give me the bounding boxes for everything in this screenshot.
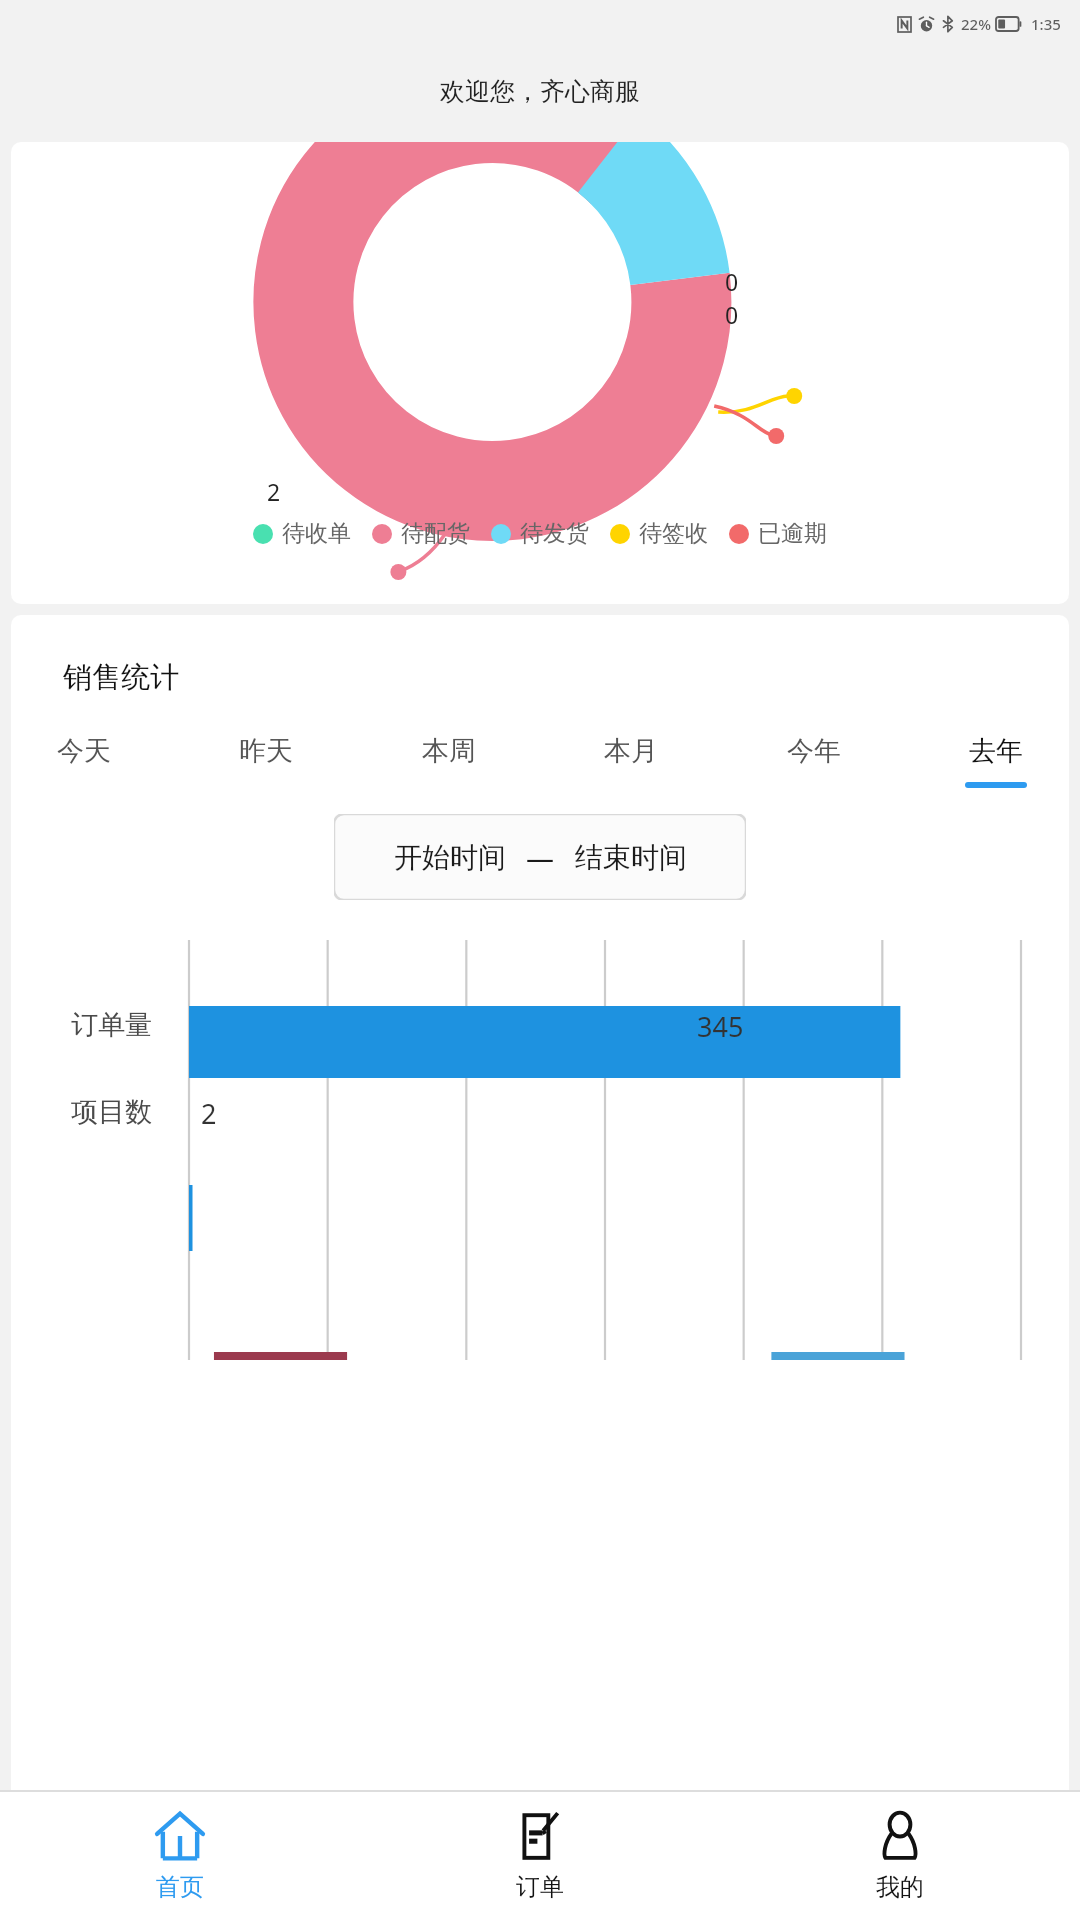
staticText: 22% <box>961 14 991 34</box>
button[interactable]: 去年 <box>955 734 1037 788</box>
staticText: 订单量 <box>71 1008 152 1042</box>
staticText: 订单 <box>516 1872 564 1902</box>
staticText: 0 <box>725 299 739 330</box>
staticText: 去年 <box>969 734 1023 768</box>
staticText: 2 <box>201 1095 217 1132</box>
staticText: 2 <box>267 476 281 507</box>
staticText: 待配货 <box>401 519 470 548</box>
button[interactable]: 待发货 <box>491 519 589 548</box>
staticText: 结束时间 <box>575 840 687 875</box>
staticText: 销售统计 <box>63 659 179 696</box>
staticText: 待发货 <box>520 519 589 548</box>
staticText: 今天 <box>57 734 111 768</box>
button[interactable]: 待收单 <box>253 519 351 548</box>
button[interactable]: 本月 <box>590 734 672 788</box>
staticText: 1:35 <box>1031 14 1061 34</box>
staticText: 本周 <box>422 734 476 768</box>
button[interactable]: 开始时间 <box>334 814 746 900</box>
staticText: 今年 <box>787 734 841 768</box>
button[interactable]: 已逾期 <box>729 519 827 548</box>
button[interactable]: 订单 <box>360 1792 720 1920</box>
button[interactable]: 今年 <box>773 734 855 788</box>
staticText: 欢迎您，齐心商服 <box>440 76 640 107</box>
staticText: 开始时间 <box>394 840 506 875</box>
staticText: — <box>526 838 555 876</box>
button[interactable]: 昨天 <box>225 734 307 788</box>
button[interactable]: 首页 <box>0 1792 360 1920</box>
staticText: 本月 <box>604 734 658 768</box>
staticText: 0 <box>725 266 739 297</box>
button[interactable]: 本周 <box>408 734 490 788</box>
button[interactable]: 待签收 <box>610 519 708 548</box>
staticText: 待签收 <box>639 519 708 548</box>
staticText: 首页 <box>156 1872 204 1902</box>
staticText: 昨天 <box>239 734 293 768</box>
staticText: 345 <box>697 1008 744 1045</box>
staticText: 已逾期 <box>758 519 827 548</box>
staticText: 我的 <box>876 1872 924 1902</box>
button[interactable]: 我的 <box>720 1792 1080 1920</box>
staticText: 项目数 <box>71 1095 152 1129</box>
staticText: 待收单 <box>282 519 351 548</box>
button[interactable]: 待配货 <box>372 519 470 548</box>
button[interactable]: 今天 <box>43 734 125 788</box>
staticText: 0 <box>11 142 20 161</box>
